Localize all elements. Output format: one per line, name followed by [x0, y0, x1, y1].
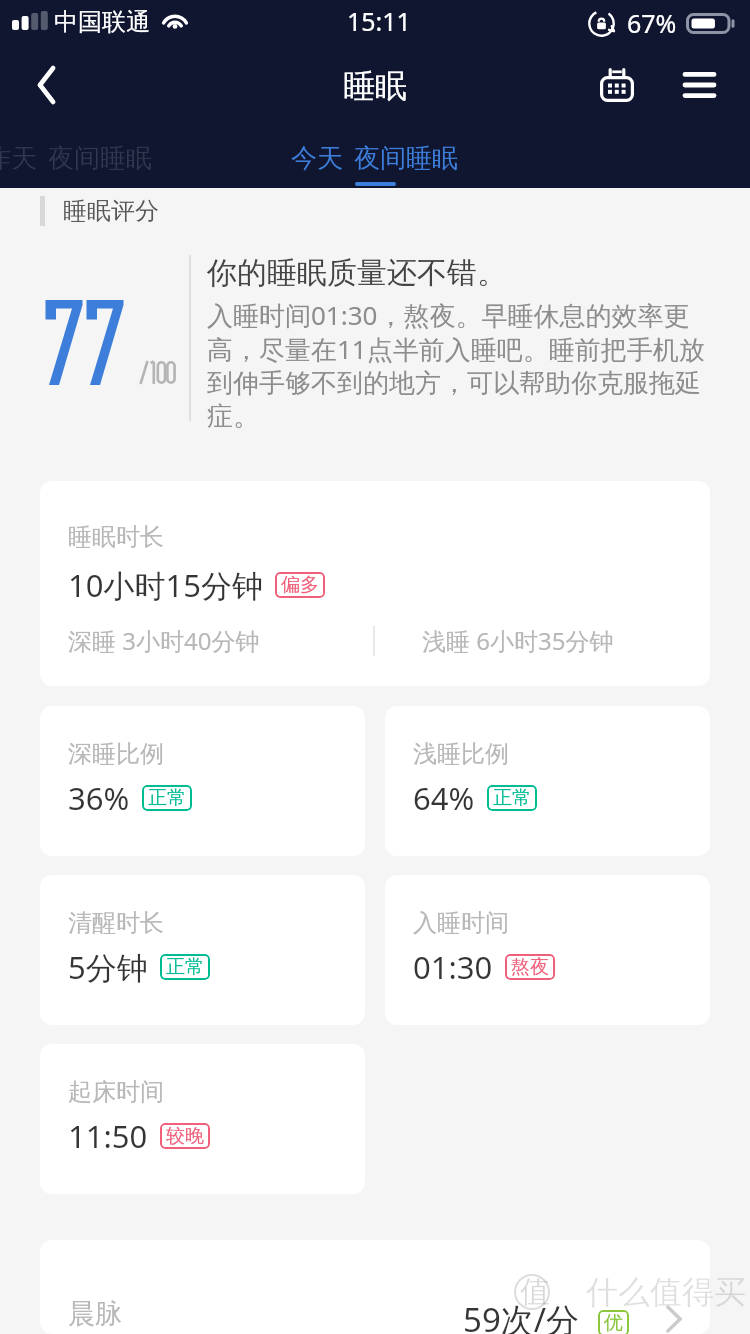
button[interactable]: 睡眠时长 [40, 481, 710, 686]
staticText: 正常 [166, 955, 204, 979]
button[interactable]: 今天 [291, 142, 458, 175]
button[interactable]: 深睡比例 [40, 706, 365, 856]
staticText: 晨脉 [68, 1297, 122, 1331]
staticText: 睡眠 [343, 66, 407, 106]
staticText: 59次/分 [463, 1297, 580, 1334]
staticText: 清醒时长 [68, 908, 164, 938]
button[interactable]: Back [6, 52, 74, 118]
staticText: 什么值得买 [586, 1272, 746, 1312]
staticText: 5分钟 [68, 946, 148, 988]
staticText: 起床时间 [68, 1077, 164, 1107]
staticText: 中国联通 [54, 7, 150, 37]
staticText: 偏多 [281, 573, 319, 597]
staticText: 11:50 [68, 1115, 148, 1157]
staticText: 浅睡 6小时35分钟 [422, 624, 614, 657]
staticText: 值 [520, 1273, 550, 1311]
staticText: 64% [413, 777, 475, 819]
staticText: 较晚 [166, 1124, 204, 1148]
staticText: 正常 [493, 786, 531, 810]
staticText: 你的睡眠质量还不错。 [207, 254, 507, 292]
staticText: 01:30 [413, 946, 493, 988]
staticText: 浅睡比例 [413, 739, 509, 769]
staticText: 夜间睡眠 [354, 142, 458, 175]
staticText: 睡眠评分 [63, 196, 159, 226]
button[interactable]: 昨天 [0, 142, 152, 175]
staticText: 15:11 [347, 4, 411, 38]
staticText: 深睡比例 [68, 739, 164, 769]
button[interactable]: Calendar [581, 51, 653, 119]
staticText: 正常 [148, 786, 186, 810]
staticText: 36% [68, 777, 130, 819]
staticText: 睡眠时长 [68, 522, 164, 552]
staticText: 优 [604, 1311, 623, 1334]
staticText: 10小时15分钟 [68, 564, 263, 606]
button[interactable]: 浅睡比例 [385, 706, 710, 856]
button[interactable]: 起床时间 [40, 1044, 365, 1194]
staticText: 昨天 [0, 142, 37, 175]
staticText: 67% [627, 6, 677, 40]
staticText: 今天 [291, 142, 343, 175]
button[interactable]: Menu [665, 51, 733, 119]
staticText: 深睡 3小时40分钟 [68, 624, 260, 657]
button[interactable]: 晨脉 [40, 1240, 710, 1334]
staticText: 入睡时间 [413, 908, 509, 938]
staticText: 熬夜 [511, 955, 549, 979]
button[interactable]: 清醒时长 [40, 875, 365, 1025]
button[interactable]: 入睡时间 [385, 875, 710, 1025]
staticText: 夜间睡眠 [48, 142, 152, 175]
staticText: 入睡时间01:30，熬夜。早睡休息的效率更 高，尽量在11点半前入睡吧。睡前把手… [207, 297, 705, 432]
